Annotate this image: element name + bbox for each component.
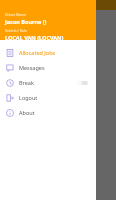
button[interactable]: Break toggle (77, 80, 90, 86)
staticText: Messages (19, 64, 45, 71)
staticText: Allocated Jobs (19, 49, 56, 56)
button[interactable]: Break (0, 75, 96, 90)
button[interactable]: Messages (0, 60, 96, 75)
staticText: Break (19, 79, 34, 86)
staticText: About (19, 109, 35, 116)
button[interactable]: Allocated Jobs (0, 45, 96, 60)
staticText: Jason Bourne () (5, 18, 47, 25)
staticText: Vehicle / Role (5, 28, 27, 33)
staticText: LOCAL VAN (LOCVAN) (5, 34, 64, 40)
button[interactable]: Logout (0, 90, 96, 105)
staticText: Logout (19, 94, 38, 101)
staticText: Driver Name (5, 12, 26, 17)
button[interactable]: About (0, 105, 96, 120)
